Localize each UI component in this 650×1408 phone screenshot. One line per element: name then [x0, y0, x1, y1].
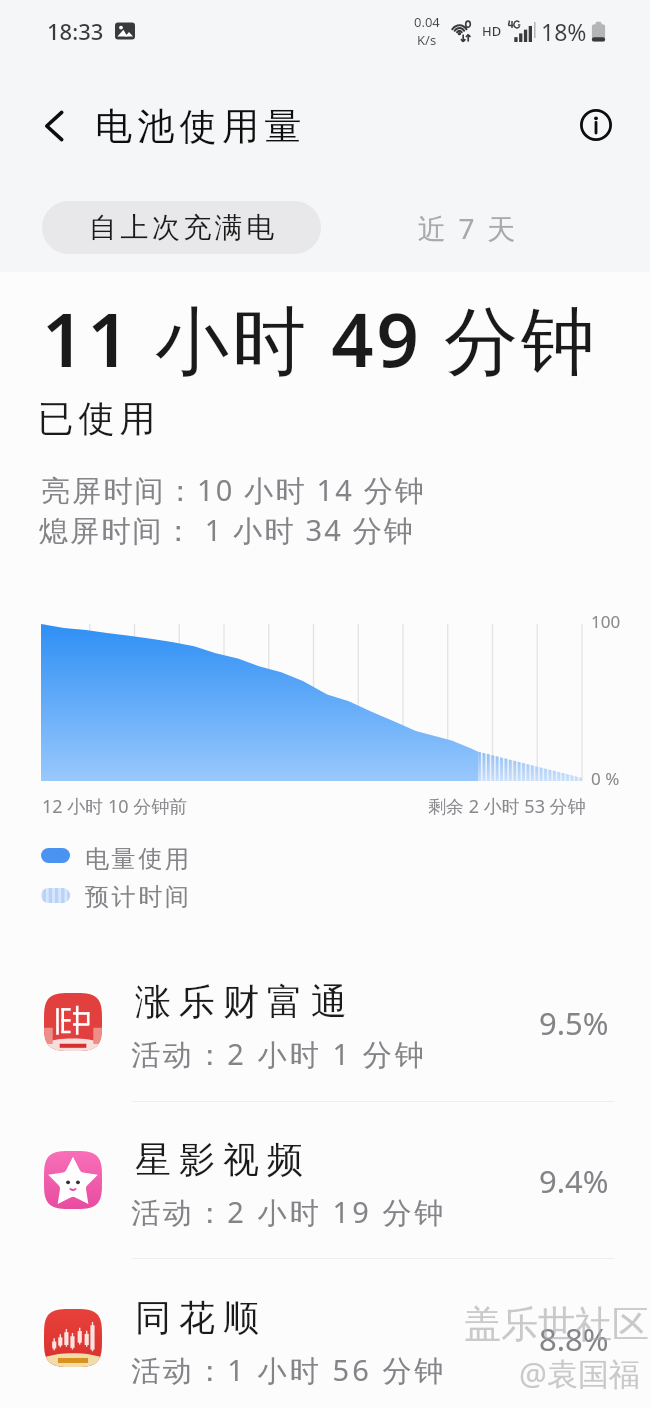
- staticText: K/s: [417, 31, 437, 49]
- staticText: 8.8%: [539, 1318, 609, 1360]
- staticText: 11 小时 49 分钟: [42, 288, 599, 389]
- staticText: 100: [591, 610, 621, 633]
- button[interactable]: 近 7 天: [360, 201, 575, 254]
- staticText: 12 小时 10 分钟前: [42, 794, 188, 819]
- staticText: 剩余 2 小时 53 分钟: [428, 794, 586, 819]
- staticText: 已使用: [35, 396, 158, 441]
- button[interactable]: 信息: [566, 95, 626, 155]
- button[interactable]: 同花顺: [0, 1273, 650, 1403]
- staticText: 0.04: [414, 13, 440, 31]
- staticText: 0 %: [591, 767, 620, 790]
- staticText: 亮屏时间：10 小时 14 分钟: [41, 470, 427, 510]
- staticText: 电池使用量: [95, 103, 307, 150]
- staticText: 同花顺: [131, 1295, 263, 1340]
- staticText: HD: [482, 22, 502, 40]
- button[interactable]: 星影视频: [0, 1115, 650, 1245]
- button[interactable]: 涨乐财富通: [0, 957, 650, 1087]
- staticText: 预计时间: [85, 882, 192, 912]
- staticText: 涨乐财富通: [131, 979, 351, 1024]
- button[interactable]: 返回: [29, 96, 89, 156]
- staticText: 近 7 天: [418, 209, 518, 247]
- staticText: 电量使用: [85, 844, 192, 874]
- staticText: 9.5%: [539, 1002, 609, 1044]
- staticText: 自上次充满电: [87, 210, 276, 245]
- staticText: 18:33: [47, 16, 104, 46]
- button[interactable]: 自上次充满电: [42, 201, 321, 254]
- staticText: 活动：2 小时 1 分钟: [131, 1034, 427, 1074]
- staticText: 星影视频: [131, 1137, 307, 1182]
- staticText: 18%: [541, 16, 587, 47]
- staticText: 盖乐世社区: [464, 1301, 649, 1348]
- staticText: 9.4%: [539, 1160, 609, 1202]
- staticText: @袁国福: [519, 1352, 640, 1394]
- staticText: 活动：2 小时 19 分钟: [131, 1192, 447, 1232]
- staticText: 活动：1 小时 56 分钟: [131, 1350, 447, 1390]
- staticText: 熄屏时间： 1 小时 34 分钟: [39, 510, 416, 550]
